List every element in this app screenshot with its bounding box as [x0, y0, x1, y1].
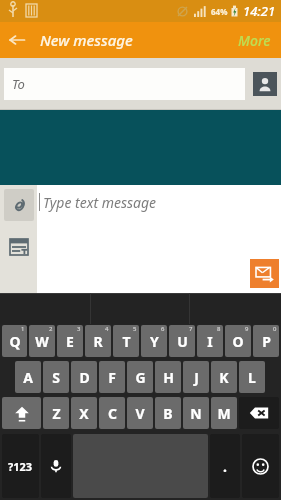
button[interactable]: D — [71, 361, 97, 393]
button[interactable]: To — [4, 68, 245, 100]
staticText: 9 — [245, 325, 249, 333]
button[interactable]: Pick contact — [253, 72, 277, 96]
button[interactable]: J — [183, 361, 209, 393]
staticText: Y — [150, 332, 159, 351]
staticText: 2 — [49, 325, 53, 333]
staticText: C — [108, 404, 117, 423]
button[interactable]: Send — [250, 259, 279, 288]
button[interactable]: T — [113, 325, 139, 357]
staticText: X — [79, 404, 89, 423]
staticText: L — [248, 368, 256, 387]
staticText: More — [238, 31, 271, 50]
staticText: A — [23, 368, 33, 387]
button[interactable]: O — [225, 325, 251, 357]
button[interactable]: R — [85, 325, 111, 357]
staticText: ?123 — [8, 459, 33, 474]
staticText: T — [122, 332, 131, 351]
staticText: W — [35, 332, 49, 351]
button[interactable]: X — [71, 397, 97, 429]
button[interactable]: U — [169, 325, 195, 357]
staticText: H — [163, 368, 174, 387]
staticText: Type text message — [43, 193, 157, 212]
staticText: D — [79, 368, 90, 387]
staticText: I — [207, 332, 213, 351]
button[interactable]: H — [155, 361, 181, 393]
staticText: . — [223, 457, 227, 476]
button[interactable]: W — [29, 325, 55, 357]
button[interactable]: Insert template — [7, 235, 31, 259]
staticText: New message — [40, 30, 133, 50]
button[interactable]: . — [210, 434, 240, 498]
staticText: 14:21 — [243, 2, 276, 20]
button[interactable]: M — [211, 397, 237, 429]
button[interactable]: Q — [2, 325, 27, 357]
staticText: N — [190, 404, 202, 423]
staticText: O — [232, 332, 244, 351]
staticText: 8 — [217, 325, 221, 333]
staticText: 7 — [189, 325, 193, 333]
button[interactable]: N — [183, 397, 209, 429]
button[interactable]: C — [99, 397, 125, 429]
staticText: U — [177, 332, 188, 351]
button[interactable]: E — [57, 325, 83, 357]
button[interactable]: S — [43, 361, 69, 393]
button[interactable]: Voice input — [41, 434, 71, 498]
staticText: 4 — [105, 325, 109, 333]
button[interactable]: Y — [141, 325, 167, 357]
staticText: S — [52, 368, 60, 387]
staticText: G — [135, 368, 146, 387]
button[interactable]: Type text message — [37, 185, 281, 293]
staticText: Q — [9, 332, 21, 351]
button[interactable]: F — [99, 361, 125, 393]
staticText: V — [135, 404, 145, 423]
button[interactable]: P — [253, 325, 279, 357]
staticText: 64% — [211, 6, 228, 17]
staticText: M — [217, 404, 231, 423]
staticText: Z — [52, 404, 61, 423]
button[interactable]: A — [15, 361, 41, 393]
staticText: E — [66, 332, 74, 351]
button[interactable]: Back — [0, 22, 34, 58]
staticText: To — [12, 75, 25, 93]
button[interactable]: V — [127, 397, 153, 429]
button[interactable]: More — [234, 27, 275, 54]
button[interactable]: I — [197, 325, 223, 357]
button[interactable]: B — [155, 397, 181, 429]
staticText: B — [163, 404, 173, 423]
button[interactable]: Z — [43, 397, 69, 429]
button[interactable]: Attach — [4, 189, 34, 221]
staticText: R — [93, 332, 103, 351]
staticText: F — [108, 368, 116, 387]
button[interactable]: Shift — [2, 397, 41, 429]
button[interactable]: Backspace — [239, 397, 279, 429]
button[interactable]: L — [239, 361, 265, 393]
button[interactable]: G — [127, 361, 153, 393]
staticText: J — [194, 368, 199, 387]
staticText: 3 — [77, 325, 81, 333]
staticText: K — [219, 368, 229, 387]
button[interactable]: K — [211, 361, 237, 393]
staticText: 1 — [21, 325, 25, 333]
staticText: 6 — [161, 325, 165, 333]
staticText: 5 — [133, 325, 137, 333]
staticText: 0 — [273, 325, 277, 333]
staticText: P — [262, 332, 271, 351]
button[interactable]: Emoji — [242, 434, 279, 498]
button[interactable]: ?123 — [2, 434, 39, 498]
